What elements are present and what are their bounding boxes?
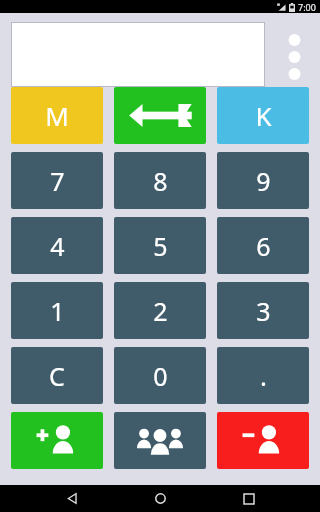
staticText: 1 [50, 294, 65, 328]
staticText: . [260, 358, 267, 393]
button[interactable]: More options [265, 22, 320, 87]
button[interactable]: C [11, 347, 103, 404]
button[interactable]: Home [143, 485, 177, 512]
staticText: 5 [153, 229, 168, 263]
button[interactable]: 4 [11, 217, 103, 274]
button[interactable]: Remove person [217, 412, 309, 469]
button[interactable]: 2 [114, 282, 206, 339]
button[interactable]: 7 [11, 152, 103, 209]
button[interactable]: 9 [217, 152, 309, 209]
button[interactable]: 0 [114, 347, 206, 404]
button[interactable]: Recent apps [232, 485, 266, 512]
button[interactable]: K [217, 87, 309, 144]
staticText: 2 [153, 294, 168, 328]
staticText: 0 [153, 359, 168, 393]
staticText: 6 [256, 229, 271, 263]
staticText: 9 [256, 164, 271, 198]
button[interactable]: 3 [217, 282, 309, 339]
button[interactable]: M [11, 87, 103, 144]
button[interactable]: 8 [114, 152, 206, 209]
button[interactable]: 5 [114, 217, 206, 274]
button[interactable]: Number display [11, 22, 265, 87]
button[interactable]: . [217, 347, 309, 404]
staticText: 4 [50, 229, 65, 263]
button[interactable]: Contacts [114, 412, 206, 469]
button[interactable]: Backspace [114, 87, 206, 144]
staticText: 3 [256, 294, 271, 328]
staticText: C [49, 359, 65, 393]
staticText: 7 [50, 164, 65, 198]
staticText: 7:00 [298, 1, 316, 13]
button[interactable]: 6 [217, 217, 309, 274]
staticText: M [45, 98, 69, 133]
staticText: 8 [153, 164, 168, 198]
staticText: K [255, 98, 272, 133]
button[interactable]: 1 [11, 282, 103, 339]
button[interactable]: Add person [11, 412, 103, 469]
button[interactable]: Back [55, 485, 89, 512]
